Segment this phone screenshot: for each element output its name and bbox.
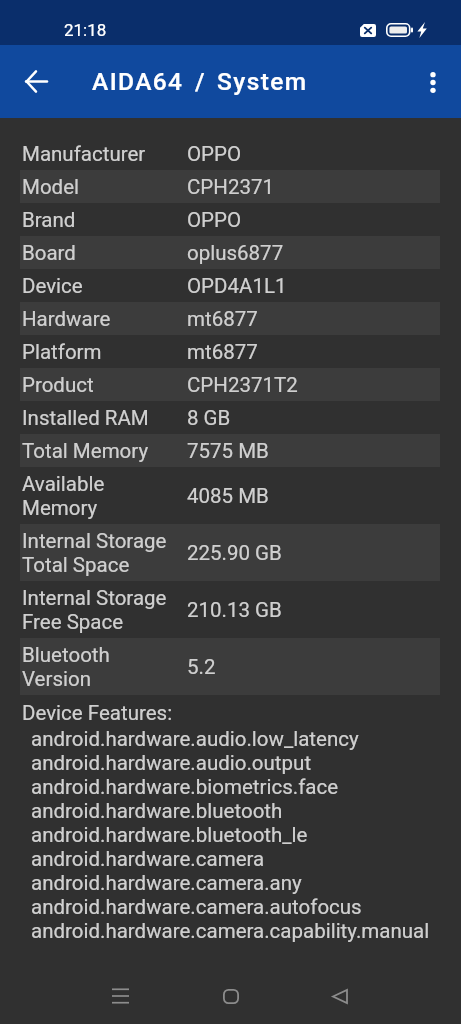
button[interactable]: Navigate up [12, 58, 59, 105]
button[interactable]: Device [20, 269, 440, 302]
staticText: System [217, 67, 308, 96]
staticText: AIDA64 [92, 67, 184, 96]
button[interactable]: Recent apps [96, 972, 144, 1020]
staticText: Hardware [22, 307, 187, 331]
staticText: Installed RAM [22, 406, 187, 430]
staticText: mt6877 [187, 307, 258, 331]
staticText: 4085 MB [187, 484, 269, 508]
staticText: android.hardware.audio.low_latency [31, 727, 359, 751]
staticText: CPH2371T2 [187, 373, 298, 397]
button[interactable]: Home [207, 972, 255, 1020]
button[interactable]: Back [316, 972, 364, 1020]
button[interactable]: More options [410, 59, 456, 105]
button[interactable]: Model [20, 170, 440, 203]
staticText: 21:18 [64, 20, 107, 40]
staticText: OPPO [187, 142, 242, 166]
staticText: Bluetooth Version [22, 643, 187, 691]
button[interactable]: Bluetooth Version [20, 638, 440, 695]
staticText: 7575 MB [187, 439, 269, 463]
staticText: android.hardware.bluetooth_le [31, 823, 308, 847]
button[interactable]: Hardware [20, 302, 440, 335]
staticText: android.hardware.biometrics.face [31, 775, 339, 799]
staticText: 210.13 GB [187, 598, 282, 622]
button[interactable]: Platform [20, 335, 440, 368]
button[interactable]: Total Memory [20, 434, 440, 467]
staticText: android.hardware.camera.any [31, 871, 302, 895]
staticText: Manufacturer [22, 142, 187, 166]
staticText: Available Memory [22, 472, 187, 520]
staticText: android.hardware.camera [31, 847, 265, 871]
staticText: android.hardware.camera.autofocus [31, 895, 362, 919]
staticText: OPD4A1L1 [187, 274, 287, 298]
button[interactable]: Available Memory [20, 467, 440, 524]
staticText: Internal Storage Free Space [22, 586, 187, 634]
button[interactable]: Manufacturer [20, 137, 440, 170]
staticText: CPH2371 [187, 175, 274, 199]
staticText: OPPO [187, 208, 242, 232]
staticText: Total Memory [22, 439, 187, 463]
button[interactable]: Brand [20, 203, 440, 236]
staticText: android.hardware.audio.output [31, 751, 312, 775]
button[interactable]: Internal Storage Total Space [20, 524, 440, 581]
staticText: Brand [22, 208, 187, 232]
staticText: oplus6877 [187, 241, 284, 265]
staticText: Platform [22, 340, 187, 364]
button[interactable]: Internal Storage Free Space [20, 581, 440, 638]
staticText: Internal Storage Total Space [22, 529, 187, 577]
staticText: 8 GB [187, 406, 231, 430]
staticText: Product [22, 373, 187, 397]
staticText: mt6877 [187, 340, 258, 364]
staticText: android.hardware.camera.capability.manua… [31, 919, 430, 943]
staticText: 5.2 [187, 655, 216, 679]
button[interactable]: Board [20, 236, 440, 269]
staticText: Device Features: [22, 701, 173, 725]
button[interactable]: Installed RAM [20, 401, 440, 434]
staticText: Board [22, 241, 187, 265]
staticText: 225.90 GB [187, 541, 282, 565]
staticText: / [195, 67, 206, 96]
button[interactable]: Product [20, 368, 440, 401]
staticText: Model [22, 175, 187, 199]
staticText: Device [22, 274, 187, 298]
staticText: android.hardware.bluetooth [31, 799, 283, 823]
